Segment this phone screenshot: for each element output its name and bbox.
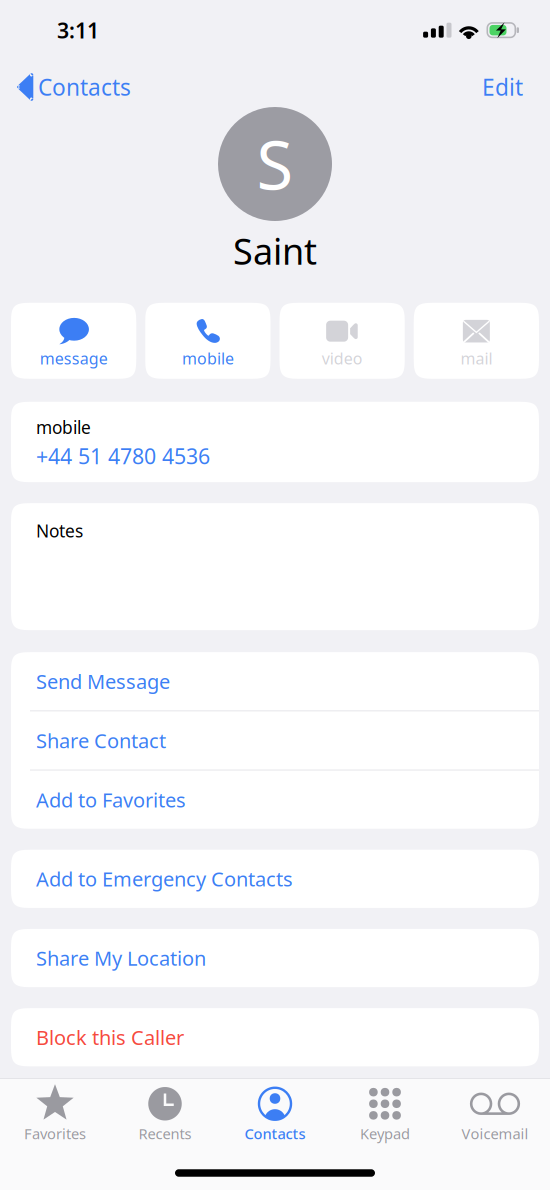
staticText: S [256,120,293,208]
button[interactable]: mobile [145,303,270,379]
button[interactable]: mobile [11,402,539,482]
button[interactable]: Share Contact [11,711,539,770]
button[interactable]: Block this Caller [11,1008,539,1066]
button[interactable]: Send Message [11,652,539,710]
button[interactable]: Add to Favorites [11,771,539,829]
button[interactable]: Contacts [0,68,131,106]
staticText: 3:11 [57,16,99,44]
staticText: video [322,348,363,369]
staticText: Share Contact [36,727,166,754]
staticText: Saint [233,227,317,275]
button[interactable]: Voicemail [440,1079,550,1143]
button[interactable]: Favorites [0,1079,110,1143]
staticText: Favorites [24,1124,86,1143]
staticText: mobile [36,416,91,439]
button[interactable]: Share My Location [11,929,539,987]
staticText: mobile [182,348,234,369]
button[interactable]: Edit [482,68,550,106]
staticText: Share My Location [36,945,206,971]
staticText: message [40,348,108,369]
button[interactable]: Keypad [330,1079,440,1143]
button[interactable]: mail [414,303,539,379]
staticText: Add to Emergency Contacts [36,866,293,892]
staticText: Add to Favorites [36,786,186,813]
button[interactable]: Add to Emergency Contacts [11,850,539,908]
button[interactable]: video [279,303,405,379]
staticText: +44 51 4780 4536 [36,442,210,470]
staticText: Notes [36,519,83,542]
staticText: Recents [138,1124,191,1143]
staticText: mail [460,348,492,369]
staticText: Block this Caller [36,1024,184,1051]
staticText: Voicemail [461,1124,528,1143]
button[interactable]: message [11,303,136,379]
staticText: Contacts [244,1124,305,1143]
staticText: Keypad [360,1124,410,1143]
button[interactable]: Recents [110,1079,220,1143]
staticText: Send Message [36,668,170,695]
button[interactable]: Contacts [220,1079,330,1143]
staticText: Edit [482,72,523,102]
staticText: Contacts [38,72,131,102]
